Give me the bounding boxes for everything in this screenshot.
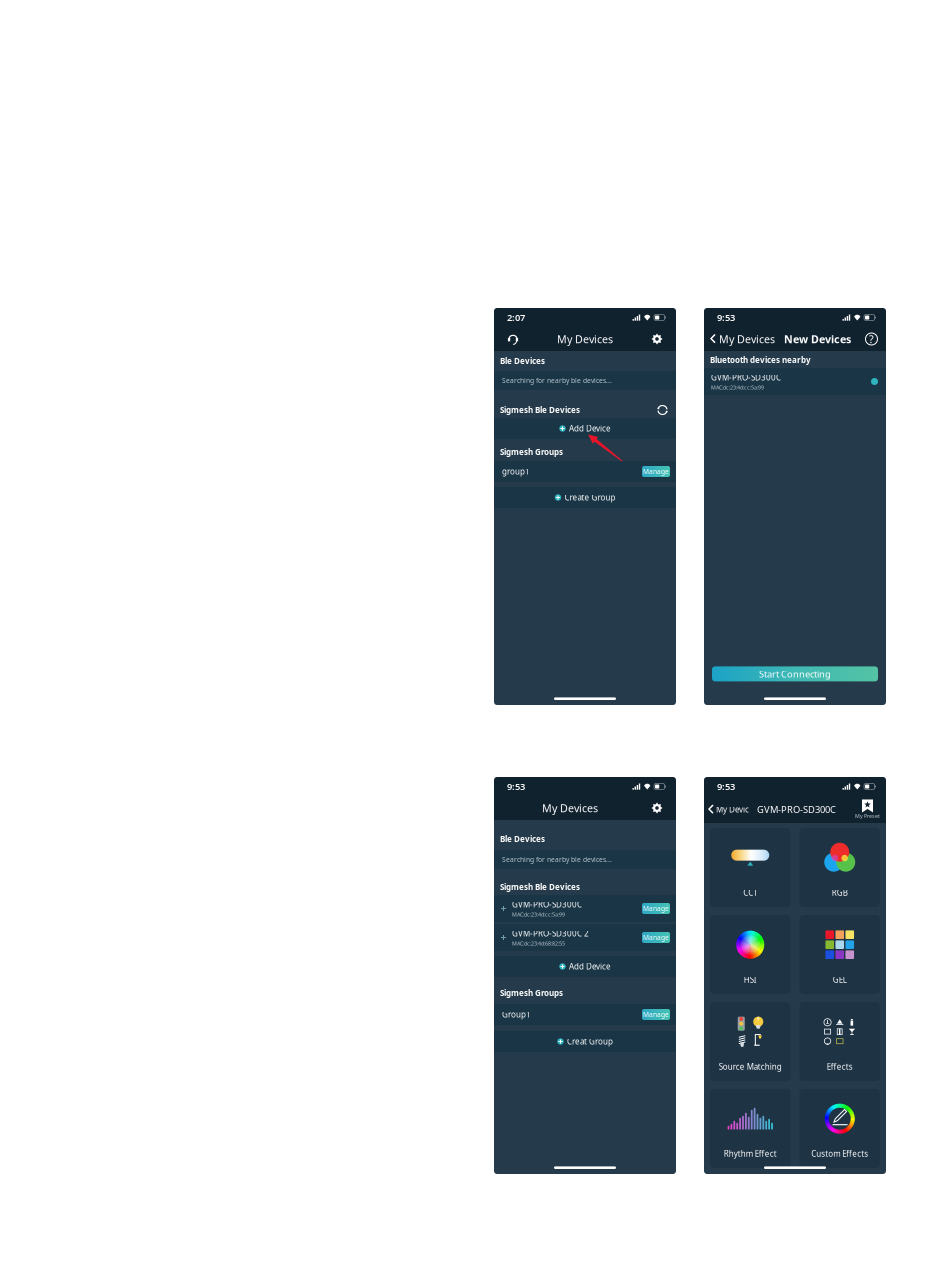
staticText: Manage (643, 904, 669, 913)
button[interactable]: Effects (799, 1002, 880, 1081)
button[interactable]: Manage (642, 1009, 670, 1020)
staticText: Sigmesh Ble Devices (500, 882, 580, 892)
staticText: My Devices (719, 332, 775, 346)
button[interactable]: Manage (642, 466, 670, 477)
button[interactable]: Add Device (494, 956, 676, 977)
staticText: My Devices (542, 801, 598, 815)
staticText: GVM-PRO-SD300C 2 (512, 928, 589, 939)
staticText: GVM-PRO-SD300C (711, 372, 781, 383)
button[interactable]: Start Connecting (712, 666, 878, 681)
staticText: GEL (833, 974, 847, 985)
button[interactable]: My Devic (704, 804, 749, 815)
staticText: Ble Devices (500, 356, 545, 366)
button[interactable]: Settings (646, 328, 676, 350)
staticText: GVM-PRO-SD300C (512, 899, 582, 910)
button[interactable]: Source Matching (710, 1002, 790, 1081)
staticText: New Devices (784, 332, 851, 346)
button[interactable]: Settings (646, 797, 676, 819)
button[interactable]: Creat Group (494, 1031, 676, 1052)
staticText: RGB (832, 887, 848, 898)
button[interactable]: GVM-PRO-SD300C 2 (494, 924, 676, 951)
staticText: Source Matching (719, 1061, 782, 1072)
staticText: Group1 (502, 1009, 531, 1020)
staticText: Create Group (564, 492, 615, 503)
button[interactable]: Support (494, 328, 524, 350)
button[interactable]: My Preset (855, 799, 886, 820)
staticText: CCT (743, 887, 757, 898)
staticText: My Preset (855, 812, 880, 820)
button[interactable]: Create Group (494, 487, 676, 508)
staticText: Sigmesh Ble Devices (500, 405, 580, 415)
button[interactable]: Manage (642, 903, 670, 914)
staticText: Effects (827, 1061, 853, 1072)
staticText: Bluetooth devices nearby (710, 355, 811, 365)
staticText: My Devic (716, 804, 749, 815)
staticText: Manage (643, 467, 669, 476)
staticText: MAC:dc:23:4d:cc:5a:99 (711, 384, 764, 391)
button[interactable]: GEL (799, 915, 880, 994)
staticText: 9:53 (507, 780, 525, 793)
staticText: MAC:dc:23:4d:cc:5a:99 (512, 911, 565, 918)
staticText: Sigmesh Groups (500, 988, 563, 998)
staticText: Custom Effects (811, 1148, 868, 1159)
staticText: My Devices (557, 332, 613, 346)
staticText: 2:07 (507, 311, 525, 324)
staticText: Sigmesh Groups (500, 447, 563, 457)
staticText: Add Device (569, 423, 611, 434)
staticText: Ble Devices (500, 834, 545, 844)
button[interactable]: Help (865, 332, 886, 345)
button[interactable]: Add Device (494, 418, 676, 439)
staticText: GVM-PRO-SD300C (757, 803, 836, 816)
staticText: Searching for nearby ble devices... (502, 376, 612, 385)
staticText: 9:53 (717, 311, 735, 324)
button[interactable]: HSI (710, 915, 790, 994)
staticText: Searching for nearby ble devices... (502, 855, 612, 864)
staticText: Manage (643, 933, 669, 942)
staticText: Manage (643, 1010, 669, 1019)
button[interactable]: Manage (642, 932, 670, 943)
button[interactable]: Custom Effects (799, 1089, 880, 1168)
button[interactable]: Rhythm Effect (710, 1089, 790, 1168)
staticText: Creat Group (567, 1036, 613, 1047)
staticText: 9:53 (717, 780, 735, 793)
button[interactable]: CCT (710, 828, 790, 907)
staticText: ? (869, 332, 874, 346)
staticText: HSI (744, 974, 757, 985)
staticText: Add Device (569, 961, 611, 972)
staticText: group1 (502, 466, 530, 477)
button[interactable]: RGB (799, 828, 880, 907)
button[interactable]: My Devices (704, 332, 775, 346)
button[interactable]: GVM-PRO-SD300C (494, 895, 676, 922)
staticText: MAC:dc:23:4d:68:82:55 (512, 940, 565, 947)
staticText: Rhythm Effect (724, 1148, 777, 1159)
staticText: Start Connecting (759, 668, 831, 680)
